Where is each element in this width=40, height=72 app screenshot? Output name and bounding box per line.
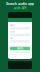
- staticText: Key: [10, 37, 13, 40]
- button[interactable]: Search: [10, 47, 30, 50]
- staticText: Email: [10, 31, 14, 33]
- staticText: with API: [13, 6, 26, 10]
- staticText: Search: [17, 47, 23, 50]
- staticText: Name: [10, 24, 15, 27]
- staticText: Search audio app: [6, 2, 34, 6]
